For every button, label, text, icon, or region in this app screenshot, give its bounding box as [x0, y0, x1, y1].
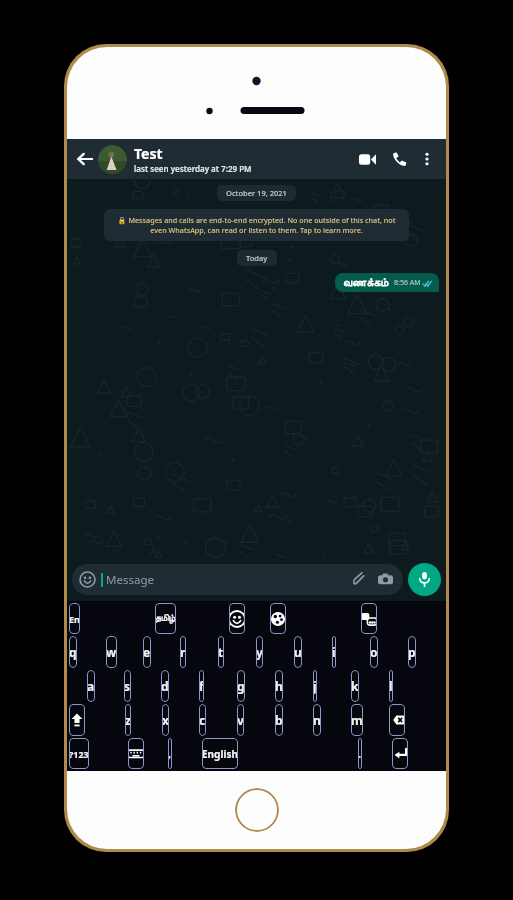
button[interactable]: En — [69, 603, 80, 634]
staticText: October 19, 2021 — [226, 188, 287, 198]
staticText: . — [358, 746, 362, 761]
button[interactable] — [98, 145, 127, 174]
staticText: n — [313, 712, 321, 728]
button[interactable]: English — [202, 738, 238, 769]
staticText: t — [218, 644, 224, 660]
staticText: d — [161, 678, 169, 694]
staticText: w — [106, 644, 117, 660]
button[interactable]: t — [218, 636, 224, 668]
staticText: g — [237, 678, 245, 694]
button[interactable]: w — [106, 636, 117, 668]
staticText: En — [69, 613, 80, 625]
button[interactable] — [128, 738, 144, 769]
button[interactable]: n — [313, 704, 321, 736]
staticText: u — [294, 644, 302, 660]
staticText: e — [143, 644, 151, 660]
staticText: 🔒 Messages and calls are end-to-end encr… — [114, 215, 399, 235]
staticText: v — [237, 712, 244, 728]
button[interactable]: Voice call — [386, 146, 412, 172]
button[interactable] — [361, 603, 377, 634]
button[interactable]: a — [87, 670, 95, 702]
button[interactable]: y — [256, 636, 263, 668]
button[interactable]: , — [168, 738, 172, 769]
button[interactable]: Back — [74, 148, 96, 170]
button[interactable]: Video call — [354, 146, 380, 172]
button[interactable]: Attach — [350, 570, 369, 589]
staticText: 8:56 AM — [394, 278, 421, 288]
staticText: English — [202, 747, 238, 761]
staticText: f — [199, 678, 204, 694]
staticText: k — [351, 678, 359, 694]
button[interactable]: s — [124, 670, 131, 702]
button[interactable]: o — [370, 636, 378, 668]
button[interactable]: e — [143, 636, 151, 668]
button[interactable]: தமிழ் — [155, 603, 176, 634]
button[interactable]: q — [69, 636, 77, 668]
staticText: ?123 — [69, 748, 89, 760]
staticText: b — [275, 712, 283, 728]
button[interactable]: More options — [415, 147, 439, 171]
button[interactable] — [229, 603, 245, 634]
button[interactable]: g — [237, 670, 245, 702]
button[interactable]: October 19, 2021 — [217, 185, 296, 201]
staticText: z — [125, 712, 131, 728]
staticText: m — [351, 712, 363, 728]
button[interactable]: k — [351, 670, 359, 702]
staticText: x — [162, 712, 169, 728]
button[interactable]: Record voice message — [408, 563, 441, 596]
staticText: q — [69, 644, 77, 660]
staticText: Test — [134, 144, 163, 163]
button[interactable]: f — [199, 670, 204, 702]
button[interactable]: Message — [72, 564, 403, 595]
staticText: r — [180, 644, 186, 660]
staticText: p — [408, 644, 416, 660]
button[interactable]: d — [161, 670, 169, 702]
button[interactable]: h — [275, 670, 283, 702]
staticText: y — [256, 644, 263, 660]
button[interactable]: Home — [235, 788, 279, 832]
button[interactable]: . — [358, 738, 362, 769]
button[interactable]: r — [180, 636, 186, 668]
button[interactable]: Today — [237, 250, 277, 266]
button[interactable]: c — [199, 704, 206, 736]
staticText: i — [332, 644, 336, 660]
button[interactable]: v — [237, 704, 244, 736]
button[interactable]: ?123 — [69, 738, 89, 769]
button[interactable]: l — [389, 670, 393, 702]
button[interactable]: Test — [134, 144, 354, 174]
staticText: a — [87, 678, 95, 694]
button[interactable]: i — [332, 636, 336, 668]
staticText: o — [370, 644, 378, 660]
button[interactable]: z — [125, 704, 131, 736]
button[interactable]: b — [275, 704, 283, 736]
button[interactable] — [270, 603, 286, 634]
button[interactable] — [392, 738, 408, 769]
button[interactable] — [69, 704, 85, 736]
button[interactable]: 🔒 Messages and calls are end-to-end encr… — [104, 209, 409, 241]
staticText: h — [275, 678, 283, 694]
button[interactable]: j — [313, 670, 317, 702]
button[interactable] — [389, 704, 405, 736]
button[interactable]: x — [162, 704, 169, 736]
staticText: s — [124, 678, 131, 694]
button[interactable]: வணக்கம் — [335, 273, 439, 292]
staticText: வணக்கம் — [343, 277, 389, 288]
staticText: j — [313, 678, 317, 694]
staticText: l — [389, 678, 393, 694]
staticText: தமிழ் — [155, 614, 176, 623]
button[interactable]: Camera — [376, 570, 395, 589]
staticText: c — [199, 712, 206, 728]
staticText: last seen yesterday at 7:29 PM — [134, 163, 252, 174]
staticText: , — [168, 746, 172, 761]
staticText: Today — [246, 253, 268, 263]
staticText: Message — [106, 572, 154, 588]
button[interactable]: p — [408, 636, 416, 668]
button[interactable]: m — [351, 704, 363, 736]
button[interactable]: u — [294, 636, 302, 668]
